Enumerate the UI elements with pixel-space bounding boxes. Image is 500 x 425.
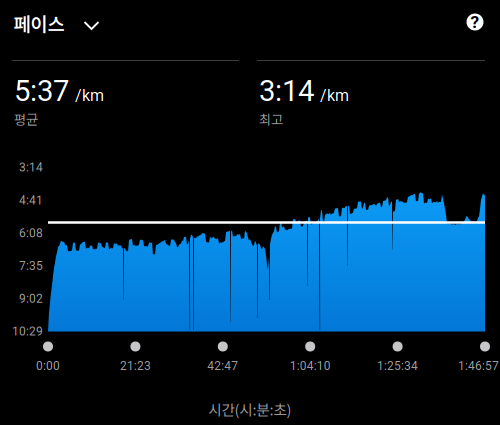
staticText: 42:47 — [207, 359, 238, 373]
staticText: 3:14 — [259, 74, 314, 108]
staticText: 페이스 — [13, 9, 64, 36]
staticText: ? — [470, 12, 479, 32]
staticText: /km — [320, 86, 349, 105]
button[interactable]: 도움말 — [455, 2, 494, 41]
staticText: 0:00 — [36, 359, 60, 373]
staticText: 3:14 — [19, 160, 43, 175]
staticText: 6:08 — [19, 226, 43, 240]
staticText: /km — [75, 86, 104, 105]
staticText: 시간(시:분:초) — [208, 398, 291, 420]
staticText: 최고 — [259, 109, 283, 129]
staticText: 10:29 — [12, 324, 43, 339]
staticText: 7:35 — [19, 259, 43, 273]
staticText: 1:46:57 — [458, 359, 499, 373]
staticText: 5:37 — [14, 74, 69, 108]
staticText: 1:04:10 — [290, 359, 331, 373]
staticText: 4:41 — [19, 193, 43, 207]
staticText: 평균 — [14, 109, 38, 129]
staticText: 1:25:34 — [377, 359, 418, 373]
staticText: 9:02 — [19, 292, 43, 306]
staticText: 21:23 — [120, 359, 151, 373]
button[interactable]: 페이스 — [1, 0, 110, 46]
